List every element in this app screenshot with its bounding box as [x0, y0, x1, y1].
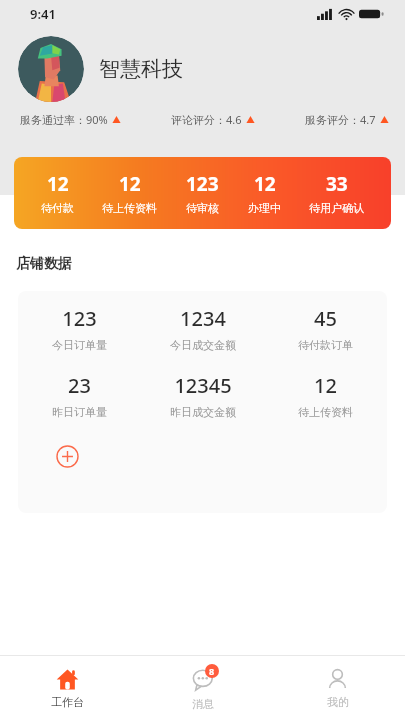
- staticText: 消息: [192, 697, 214, 711]
- staticText: 12: [47, 171, 69, 197]
- staticText: 待上传资料: [298, 405, 353, 419]
- staticText: 昨日订单量: [52, 405, 107, 419]
- button[interactable]: 12: [39, 171, 76, 215]
- staticText: 待用户确认: [309, 201, 364, 215]
- staticText: 12: [314, 372, 337, 399]
- staticText: 服务通过率：: [20, 113, 86, 127]
- staticText: 123: [62, 305, 97, 332]
- staticText: 昨日成交金额: [170, 405, 236, 419]
- staticText: 4.7: [360, 112, 376, 127]
- staticText: 4.6: [226, 112, 242, 127]
- button[interactable]: 智慧科技: [18, 36, 405, 102]
- button[interactable]: 工作台: [0, 656, 135, 720]
- staticText: 待上传资料: [102, 201, 157, 215]
- button[interactable]: 我的: [270, 656, 405, 720]
- button[interactable]: 12345: [141, 372, 264, 419]
- button[interactable]: 123: [184, 171, 221, 215]
- button[interactable]: 12: [246, 171, 283, 215]
- staticText: 90%: [86, 112, 108, 127]
- staticText: 工作台: [51, 695, 84, 709]
- staticText: 9:41: [30, 5, 56, 23]
- staticText: 服务评分：: [305, 113, 360, 127]
- staticText: 12: [119, 171, 141, 197]
- staticText: 12: [254, 171, 276, 197]
- staticText: 12345: [174, 372, 232, 399]
- button[interactable]: 45: [264, 305, 387, 352]
- staticText: 33: [326, 171, 348, 197]
- button[interactable]: 添加: [52, 441, 82, 471]
- button[interactable]: 1234: [141, 305, 264, 352]
- staticText: 我的: [327, 695, 349, 709]
- staticText: 1234: [180, 305, 226, 332]
- staticText: 待付款订单: [298, 338, 353, 352]
- button[interactable]: 123: [18, 305, 141, 352]
- button[interactable]: 8: [135, 656, 270, 720]
- button[interactable]: 12: [100, 171, 159, 215]
- staticText: 智慧科技: [99, 56, 183, 82]
- button[interactable]: 12: [264, 372, 387, 419]
- staticText: 45: [314, 305, 337, 332]
- staticText: 评论评分：: [171, 113, 226, 127]
- staticText: 办理中: [248, 201, 281, 215]
- button[interactable]: 23: [18, 372, 141, 419]
- staticText: 店铺数据: [16, 255, 72, 273]
- button[interactable]: 33: [307, 171, 366, 215]
- staticText: 23: [68, 372, 91, 399]
- staticText: 今日成交金额: [170, 338, 236, 352]
- staticText: 今日订单量: [52, 338, 107, 352]
- staticText: 8: [209, 665, 215, 677]
- staticText: 123: [186, 171, 219, 197]
- staticText: 待付款: [41, 201, 74, 215]
- staticText: 待审核: [186, 201, 219, 215]
